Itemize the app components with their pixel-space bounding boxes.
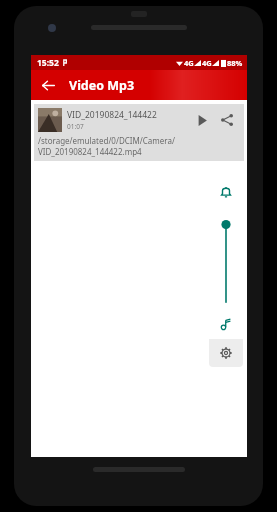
button[interactable]: Play	[191, 109, 213, 131]
staticText: VID_20190824_144422.mp4	[38, 146, 142, 157]
button[interactable]: Alarm	[209, 175, 243, 209]
button[interactable]: Audio	[209, 309, 243, 339]
button[interactable]: Settings	[209, 339, 243, 367]
staticText: 4G	[202, 58, 212, 68]
staticText: Video Mp3	[69, 77, 135, 94]
button[interactable]: Back	[35, 72, 61, 98]
button[interactable]: Share	[216, 109, 238, 131]
staticText: 01:07	[67, 122, 84, 131]
staticText: 4G	[184, 58, 194, 68]
staticText: /storage/emulated/0/DCIM/Camera/	[38, 135, 175, 146]
staticText: 88%	[227, 58, 243, 68]
staticText: VID_20190824_144422	[67, 109, 157, 121]
button[interactable]: VID_20190824_144422	[34, 104, 244, 161]
staticText: 15:52	[37, 57, 59, 69]
